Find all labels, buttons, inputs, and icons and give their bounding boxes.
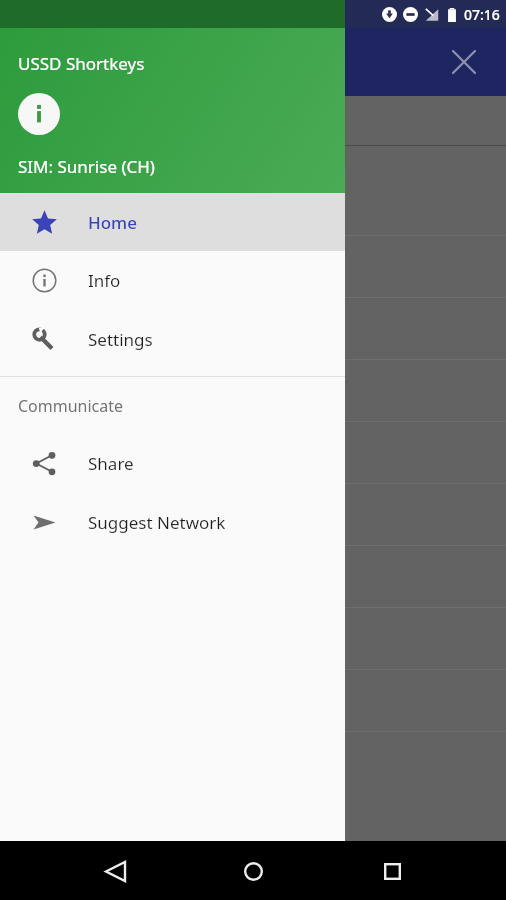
button[interactable]: Info <box>0 251 345 310</box>
button[interactable]: Check balance if you do not have <box>0 236 506 298</box>
staticText: Check own number on the phone <box>16 194 267 216</box>
button[interactable]: Back <box>91 847 139 895</box>
button[interactable]: Transfer credit via the refill <box>0 422 506 484</box>
button[interactable]: Home <box>229 847 277 895</box>
button[interactable]: Settings <box>0 310 345 369</box>
button[interactable]: Recharge prepaid card (different <box>0 546 506 608</box>
button[interactable]: App info <box>18 93 60 135</box>
button[interactable]: Check own number on the phone <box>0 174 506 236</box>
staticText: Recharge by voucher number <box>16 318 239 340</box>
staticText: 07:16 <box>464 5 500 24</box>
button[interactable]: Share <box>0 434 345 493</box>
staticText: Info <box>88 269 121 292</box>
button[interactable]: Activate roaming abroad – sign <box>0 670 506 732</box>
staticText: Home <box>88 211 137 234</box>
staticText: Suggest Network <box>88 511 226 534</box>
staticText: Check balance if you do not have <box>16 256 263 278</box>
button[interactable] <box>0 360 506 422</box>
button[interactable]: Recharge by voucher number <box>0 298 506 360</box>
button[interactable]: Suggest Network <box>0 493 345 552</box>
button[interactable]: Check data volume remaining <box>0 608 506 670</box>
staticText: Settings <box>88 328 153 351</box>
button[interactable]: Close search <box>442 40 486 84</box>
staticText: Recharge prepaid card (your own <box>16 504 266 526</box>
staticText: Communicate <box>18 395 124 417</box>
staticText: USSD Shortkeys <box>18 52 145 75</box>
button[interactable]: Recharge prepaid card (your own <box>0 484 506 546</box>
staticText: SIM: Sunrise (CH) <box>18 155 155 178</box>
button[interactable]: Home <box>0 193 345 251</box>
button[interactable]: Recent apps <box>368 847 416 895</box>
staticText: Transfer credit via the refill <box>16 442 217 464</box>
staticText: Share <box>88 452 134 475</box>
